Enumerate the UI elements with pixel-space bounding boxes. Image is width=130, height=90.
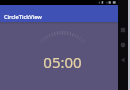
button[interactable]: Home	[118, 40, 128, 50]
button[interactable]: Back	[118, 55, 128, 65]
staticText: 05:00	[43, 52, 82, 72]
button[interactable]: Recents	[118, 25, 128, 35]
staticText: CircleTickView	[4, 13, 42, 21]
